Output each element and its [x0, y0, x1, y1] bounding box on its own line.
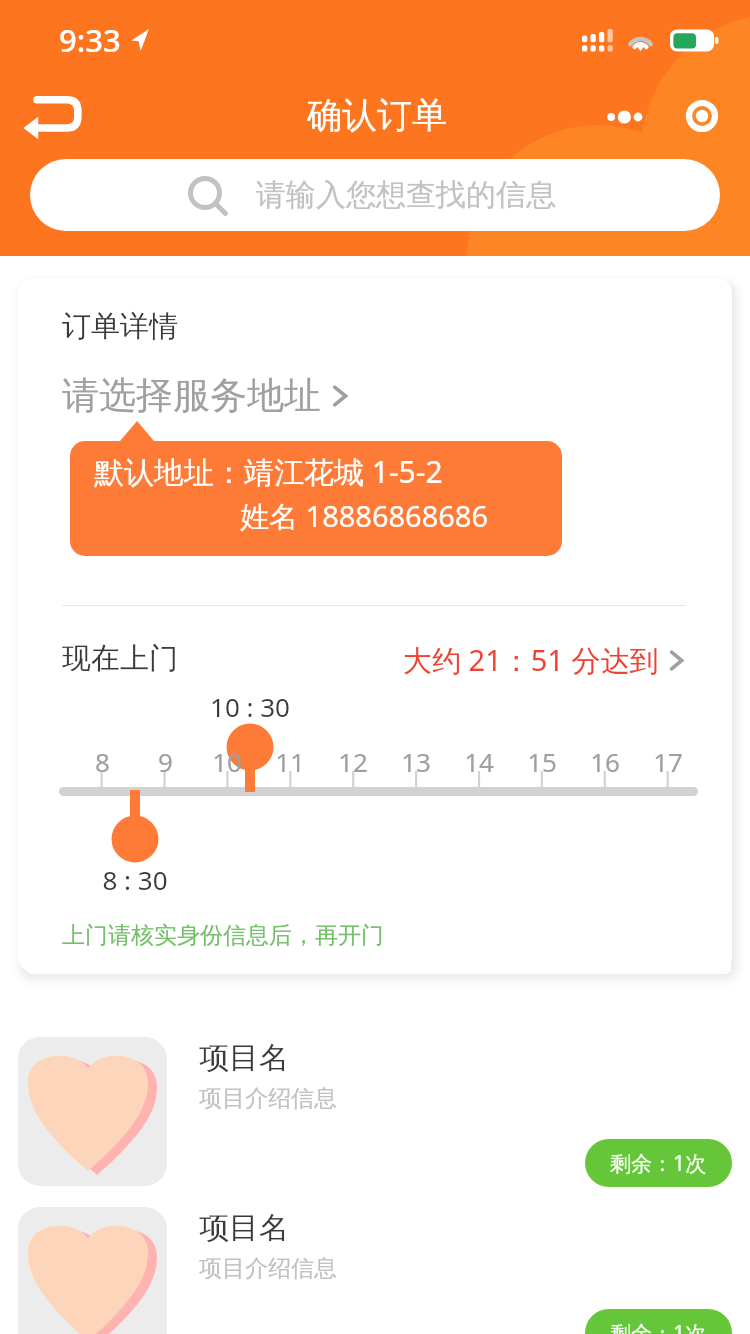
staticText: 17 [653, 744, 683, 779]
staticText: 请选择服务地址 [62, 372, 321, 419]
button[interactable]: 请选择服务地址 [62, 372, 347, 419]
button[interactable]: 剩余：1次 [585, 1309, 732, 1334]
staticText: 现在上门 [62, 640, 178, 677]
button[interactable]: 项目名 [0, 1207, 750, 1334]
staticText: 项目介绍信息 [199, 1254, 337, 1283]
staticText: 8 [95, 744, 110, 779]
button[interactable]: More options [589, 82, 661, 154]
button[interactable]: 请输入您想查找的信息 [30, 159, 720, 231]
staticText: 姓名 18886868686 [240, 496, 489, 536]
staticText: 订单详情 [62, 308, 178, 345]
staticText: 14 [464, 744, 494, 779]
staticText: 确认订单 [307, 93, 447, 137]
staticText: 默认地址：靖江花城 1-5-2 [94, 451, 443, 492]
staticText: 11 [275, 744, 305, 779]
staticText: 请输入您想查找的信息 [256, 176, 556, 214]
staticText: 项目介绍信息 [199, 1084, 337, 1113]
button[interactable]: 项目名 [0, 1037, 750, 1187]
staticText: 13 [401, 744, 431, 779]
staticText: 10 [212, 744, 242, 779]
staticText: 9:33 [59, 19, 121, 61]
button[interactable]: 大约 21：51 分达到 [403, 640, 683, 680]
staticText: 项目名 [199, 1039, 289, 1077]
staticText: 剩余：1次 [610, 1319, 707, 1334]
staticText: 9 [158, 744, 173, 779]
staticText: 15 [527, 744, 557, 779]
staticText: 8 : 30 [102, 862, 168, 897]
button[interactable]: Scan code [666, 81, 738, 153]
staticText: 项目名 [199, 1209, 289, 1247]
staticText: 16 [590, 744, 620, 779]
staticText: 上门请核实身份信息后，再开门 [62, 921, 384, 950]
staticText: 10 : 30 [210, 689, 290, 724]
button[interactable]: 剩余：1次 [585, 1139, 732, 1187]
staticText: 剩余：1次 [610, 1149, 707, 1178]
staticText: 12 [338, 744, 368, 779]
staticText: 大约 21：51 分达到 [403, 640, 659, 680]
button[interactable]: Back [18, 83, 90, 155]
